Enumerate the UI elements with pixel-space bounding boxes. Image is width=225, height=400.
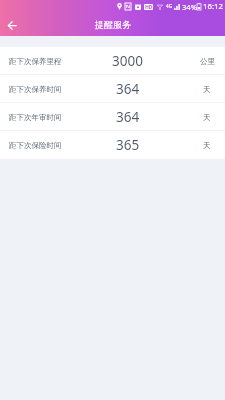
- staticText: 3000: [112, 52, 143, 70]
- staticText: HD: [145, 4, 153, 10]
- button[interactable]: Back: [3, 16, 21, 34]
- staticText: 365: [116, 136, 140, 154]
- staticText: 提醒服务: [95, 19, 131, 30]
- staticText: 34%: [182, 2, 197, 12]
- staticText: 天: [203, 113, 211, 122]
- staticText: 距下次保养里程: [9, 57, 62, 66]
- staticText: 公里: [200, 57, 215, 66]
- staticText: 364: [116, 80, 140, 98]
- staticText: 364: [116, 108, 140, 126]
- staticText: 距下次保险时间: [9, 141, 62, 150]
- staticText: 16:12: [203, 1, 223, 12]
- button[interactable]: 距下次保养时间: [0, 75, 225, 103]
- staticText: 天: [203, 85, 211, 94]
- staticText: 天: [203, 141, 211, 150]
- button[interactable]: 距下次年审时间: [0, 103, 225, 131]
- staticText: 距下次保养时间: [9, 85, 62, 94]
- button[interactable]: 距下次保养里程: [0, 47, 225, 75]
- staticText: 4G: [166, 3, 172, 9]
- staticText: 距下次年审时间: [9, 113, 62, 122]
- button[interactable]: 距下次保险时间: [0, 131, 225, 159]
